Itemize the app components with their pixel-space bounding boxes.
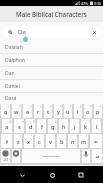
button[interactable]: : (45, 134, 56, 149)
staticText: & (55, 120, 57, 124)
button[interactable]: 3 (22, 104, 33, 119)
staticText: . (86, 157, 87, 162)
staticText: $ (33, 120, 35, 124)
staticText: , (16, 157, 17, 162)
staticText: x (27, 138, 31, 146)
button[interactable]: _ (36, 119, 47, 134)
staticText: p (96, 108, 100, 116)
staticText: m (81, 138, 87, 146)
staticText: ) (100, 120, 101, 124)
staticText: Dara (5, 95, 17, 102)
button[interactable]: Home (44, 167, 60, 183)
button[interactable]: Daniel (0, 80, 103, 92)
staticText: n (71, 138, 75, 146)
staticText: 8 (80, 105, 82, 109)
staticText: Dan (5, 70, 15, 77)
staticText: ? (86, 135, 88, 139)
button[interactable]: Clear search (92, 30, 97, 35)
staticText: z (17, 138, 20, 146)
button[interactable]: ' (34, 134, 45, 149)
button[interactable]: Dalaiah (0, 41, 103, 53)
button[interactable]: Dalphon (0, 54, 103, 66)
staticText: 1 (8, 105, 10, 109)
staticText: Dalaiah (5, 44, 23, 51)
staticText: o (86, 108, 90, 116)
button[interactable]: Search (4, 26, 100, 38)
staticText: l (96, 123, 98, 131)
staticText: a (5, 123, 9, 131)
staticText: @ (9, 120, 12, 124)
button[interactable]: 4 (33, 104, 43, 119)
staticText: ' (43, 135, 44, 139)
button[interactable]: ! (67, 134, 78, 149)
staticText: - (67, 120, 68, 124)
staticText: 0 (100, 105, 102, 109)
button[interactable]: * (13, 134, 23, 149)
staticText: g (51, 123, 55, 131)
staticText: d (29, 123, 33, 131)
staticText: Da (18, 28, 26, 36)
button[interactable]: Back (14, 167, 30, 183)
button[interactable]: + (69, 119, 80, 134)
button[interactable]: 2 (11, 104, 22, 119)
button[interactable]: - (58, 119, 69, 134)
button[interactable]: Voice input (81, 149, 91, 164)
button[interactable]: # (13, 119, 25, 134)
staticText: j (74, 123, 76, 131)
staticText: _ (44, 120, 46, 124)
button[interactable]: ( (80, 119, 91, 134)
staticText: q (4, 108, 8, 116)
staticText: 3 (30, 105, 32, 109)
staticText: 5 (50, 105, 52, 109)
button[interactable]: @ (1, 119, 13, 134)
staticText: 4 (40, 105, 42, 109)
button[interactable]: Recent apps (73, 167, 89, 183)
button[interactable]: 0 (93, 104, 103, 119)
staticText: Daniel (5, 83, 20, 90)
button[interactable]: 7 (63, 104, 73, 119)
button[interactable]: 1 (0, 104, 11, 119)
button[interactable]: Settings (11, 149, 21, 164)
staticText: w (14, 108, 19, 116)
staticText: * (20, 135, 22, 139)
staticText: i (77, 108, 79, 116)
staticText: v (49, 138, 52, 146)
staticText: 7 (70, 105, 72, 109)
staticText: b (60, 138, 64, 146)
button[interactable]: Backspace (89, 134, 103, 149)
button[interactable]: 6 (53, 104, 63, 119)
staticText: y (57, 108, 60, 116)
staticText: s (18, 123, 21, 131)
staticText: # (22, 120, 24, 124)
staticText: h (62, 123, 66, 131)
staticText: + (77, 120, 79, 124)
staticText: 47% (81, 1, 89, 6)
button[interactable]: $ (25, 119, 36, 134)
button[interactable]: ) (91, 119, 102, 134)
button[interactable]: Enter (91, 149, 103, 164)
button[interactable]: Symbols (0, 149, 11, 164)
staticText: 9 (90, 105, 92, 109)
button[interactable]: ? (78, 134, 89, 149)
button[interactable]: Dara (0, 93, 103, 104)
button[interactable]: ; (56, 134, 67, 149)
button[interactable]: " (23, 134, 34, 149)
staticText: ; (65, 135, 66, 139)
staticText: k (84, 123, 88, 131)
button[interactable]: Shift (0, 134, 13, 149)
button[interactable]: Dan (0, 67, 103, 79)
staticText: 2 (19, 105, 21, 109)
staticText: 3:35 (94, 1, 102, 6)
button[interactable]: 8 (73, 104, 83, 119)
staticText: ( (89, 120, 90, 124)
button[interactable]: & (47, 119, 58, 134)
button[interactable]: 9 (83, 104, 93, 119)
staticText: e (26, 108, 30, 116)
staticText: t (47, 108, 50, 116)
staticText: " (31, 135, 33, 139)
staticText: u (66, 108, 70, 116)
staticText: 12# (2, 157, 9, 162)
staticText: r (37, 108, 40, 116)
button[interactable]: Space (21, 149, 81, 164)
button[interactable]: 5 (43, 104, 53, 119)
